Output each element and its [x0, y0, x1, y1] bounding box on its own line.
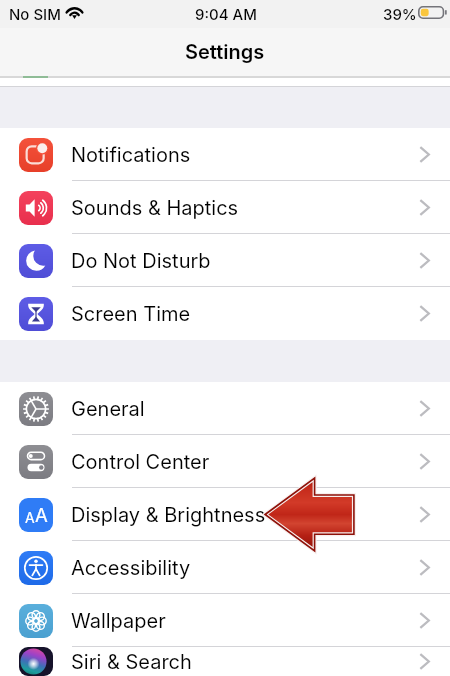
button[interactable]: A: [0, 488, 450, 541]
staticText: Display & Brightness: [71, 503, 420, 527]
staticText: Wallpaper: [71, 609, 420, 633]
button[interactable]: Control Center: [0, 435, 450, 488]
staticText: Screen Time: [71, 302, 420, 326]
staticText: 39%: [383, 5, 417, 23]
staticText: No SIM: [9, 5, 61, 23]
staticText: Do Not Disturb: [71, 249, 420, 273]
staticText: A: [35, 504, 48, 526]
button[interactable]: Sounds & Haptics: [0, 181, 450, 234]
other: Arrow pointing to Display & Brightness: [264, 477, 355, 552]
staticText: Control Center: [71, 450, 420, 474]
staticText: Siri & Search: [71, 650, 420, 674]
button[interactable]: General: [0, 382, 450, 435]
button[interactable]: Siri & Search: [0, 647, 450, 676]
button[interactable]: Screen Time: [0, 287, 450, 340]
staticText: 9:04 AM: [195, 5, 257, 23]
button[interactable]: Notifications: [0, 128, 450, 181]
staticText: A: [25, 509, 35, 526]
staticText: Settings: [185, 40, 265, 64]
staticText: General: [71, 397, 420, 421]
button[interactable]: Wallpaper: [0, 594, 450, 647]
staticText: Accessibility: [71, 556, 420, 580]
button[interactable]: Accessibility: [0, 541, 450, 594]
button[interactable]: Do Not Disturb: [0, 234, 450, 287]
staticText: Notifications: [71, 143, 420, 167]
staticText: Sounds & Haptics: [71, 196, 420, 220]
